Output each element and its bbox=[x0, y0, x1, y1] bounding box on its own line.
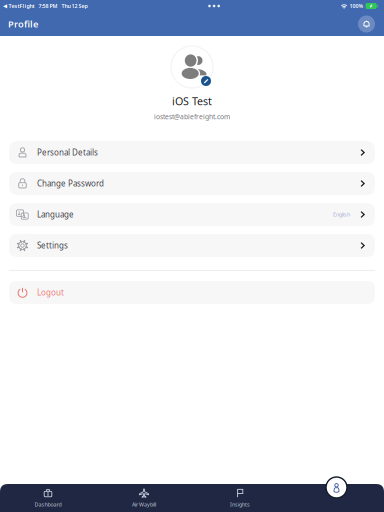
button[interactable]: Dashboard bbox=[0, 484, 96, 512]
staticText: Air Waybill bbox=[132, 501, 156, 508]
button[interactable]: Profile bbox=[326, 477, 347, 498]
button[interactable]: Notifications bbox=[358, 15, 375, 32]
staticText: Personal Details bbox=[37, 147, 98, 158]
staticText: Change Password bbox=[37, 178, 104, 189]
staticText: Profile bbox=[8, 18, 38, 30]
staticText: Logout bbox=[37, 287, 64, 298]
staticText: English bbox=[333, 211, 350, 218]
button[interactable]: Change Password bbox=[9, 172, 375, 195]
button[interactable]: Personal Details bbox=[9, 141, 375, 164]
staticText: Thu 12 Sep bbox=[62, 2, 88, 10]
button[interactable]: Logout bbox=[9, 281, 375, 304]
staticText: 100% bbox=[350, 2, 364, 10]
button[interactable]: Insights bbox=[192, 484, 288, 512]
staticText: TestFlight bbox=[9, 2, 35, 10]
staticText: 7:58 PM bbox=[39, 2, 58, 10]
button[interactable]: Settings bbox=[9, 234, 375, 257]
staticText: Dashboard bbox=[34, 501, 61, 508]
staticText: iostest@ablefreight.com bbox=[154, 112, 230, 121]
staticText: Settings bbox=[37, 240, 68, 251]
staticText: Language bbox=[37, 209, 74, 220]
button[interactable]: Language bbox=[9, 203, 375, 226]
staticText: ◀ bbox=[3, 3, 7, 9]
staticText: iOS Test bbox=[172, 94, 212, 108]
staticText: Insights bbox=[230, 501, 250, 508]
button[interactable]: Air Waybill bbox=[96, 484, 192, 512]
